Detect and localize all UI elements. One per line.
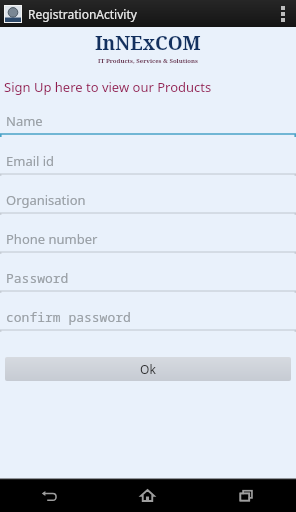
- button[interactable]: Home: [98, 479, 197, 512]
- button[interactable]: Phone number: [0, 226, 296, 265]
- staticText: Phone number: [6, 230, 98, 248]
- button[interactable]: Ok: [5, 357, 291, 381]
- staticText: InNExCOM: [95, 30, 201, 56]
- staticText: Email id: [6, 152, 55, 170]
- staticText: Ok: [140, 361, 156, 377]
- button[interactable]: Email id: [0, 148, 296, 187]
- button[interactable]: More options: [274, 2, 292, 26]
- staticText: Name: [6, 112, 43, 130]
- button[interactable]: Password: [0, 265, 296, 304]
- staticText: RegistrationActivity: [28, 6, 137, 22]
- button[interactable]: Recent apps: [197, 479, 296, 512]
- button[interactable]: Organisation: [0, 187, 296, 226]
- staticText: Password: [6, 269, 69, 287]
- staticText: IT Products, Services & Solutions: [98, 57, 198, 65]
- staticText: Sign Up here to view our Products: [4, 78, 212, 96]
- staticText: Organisation: [6, 191, 86, 209]
- button[interactable]: confirm password: [0, 304, 296, 343]
- button[interactable]: Back: [0, 479, 98, 512]
- staticText: confirm password: [6, 308, 131, 326]
- button[interactable]: Name: [0, 108, 296, 148]
